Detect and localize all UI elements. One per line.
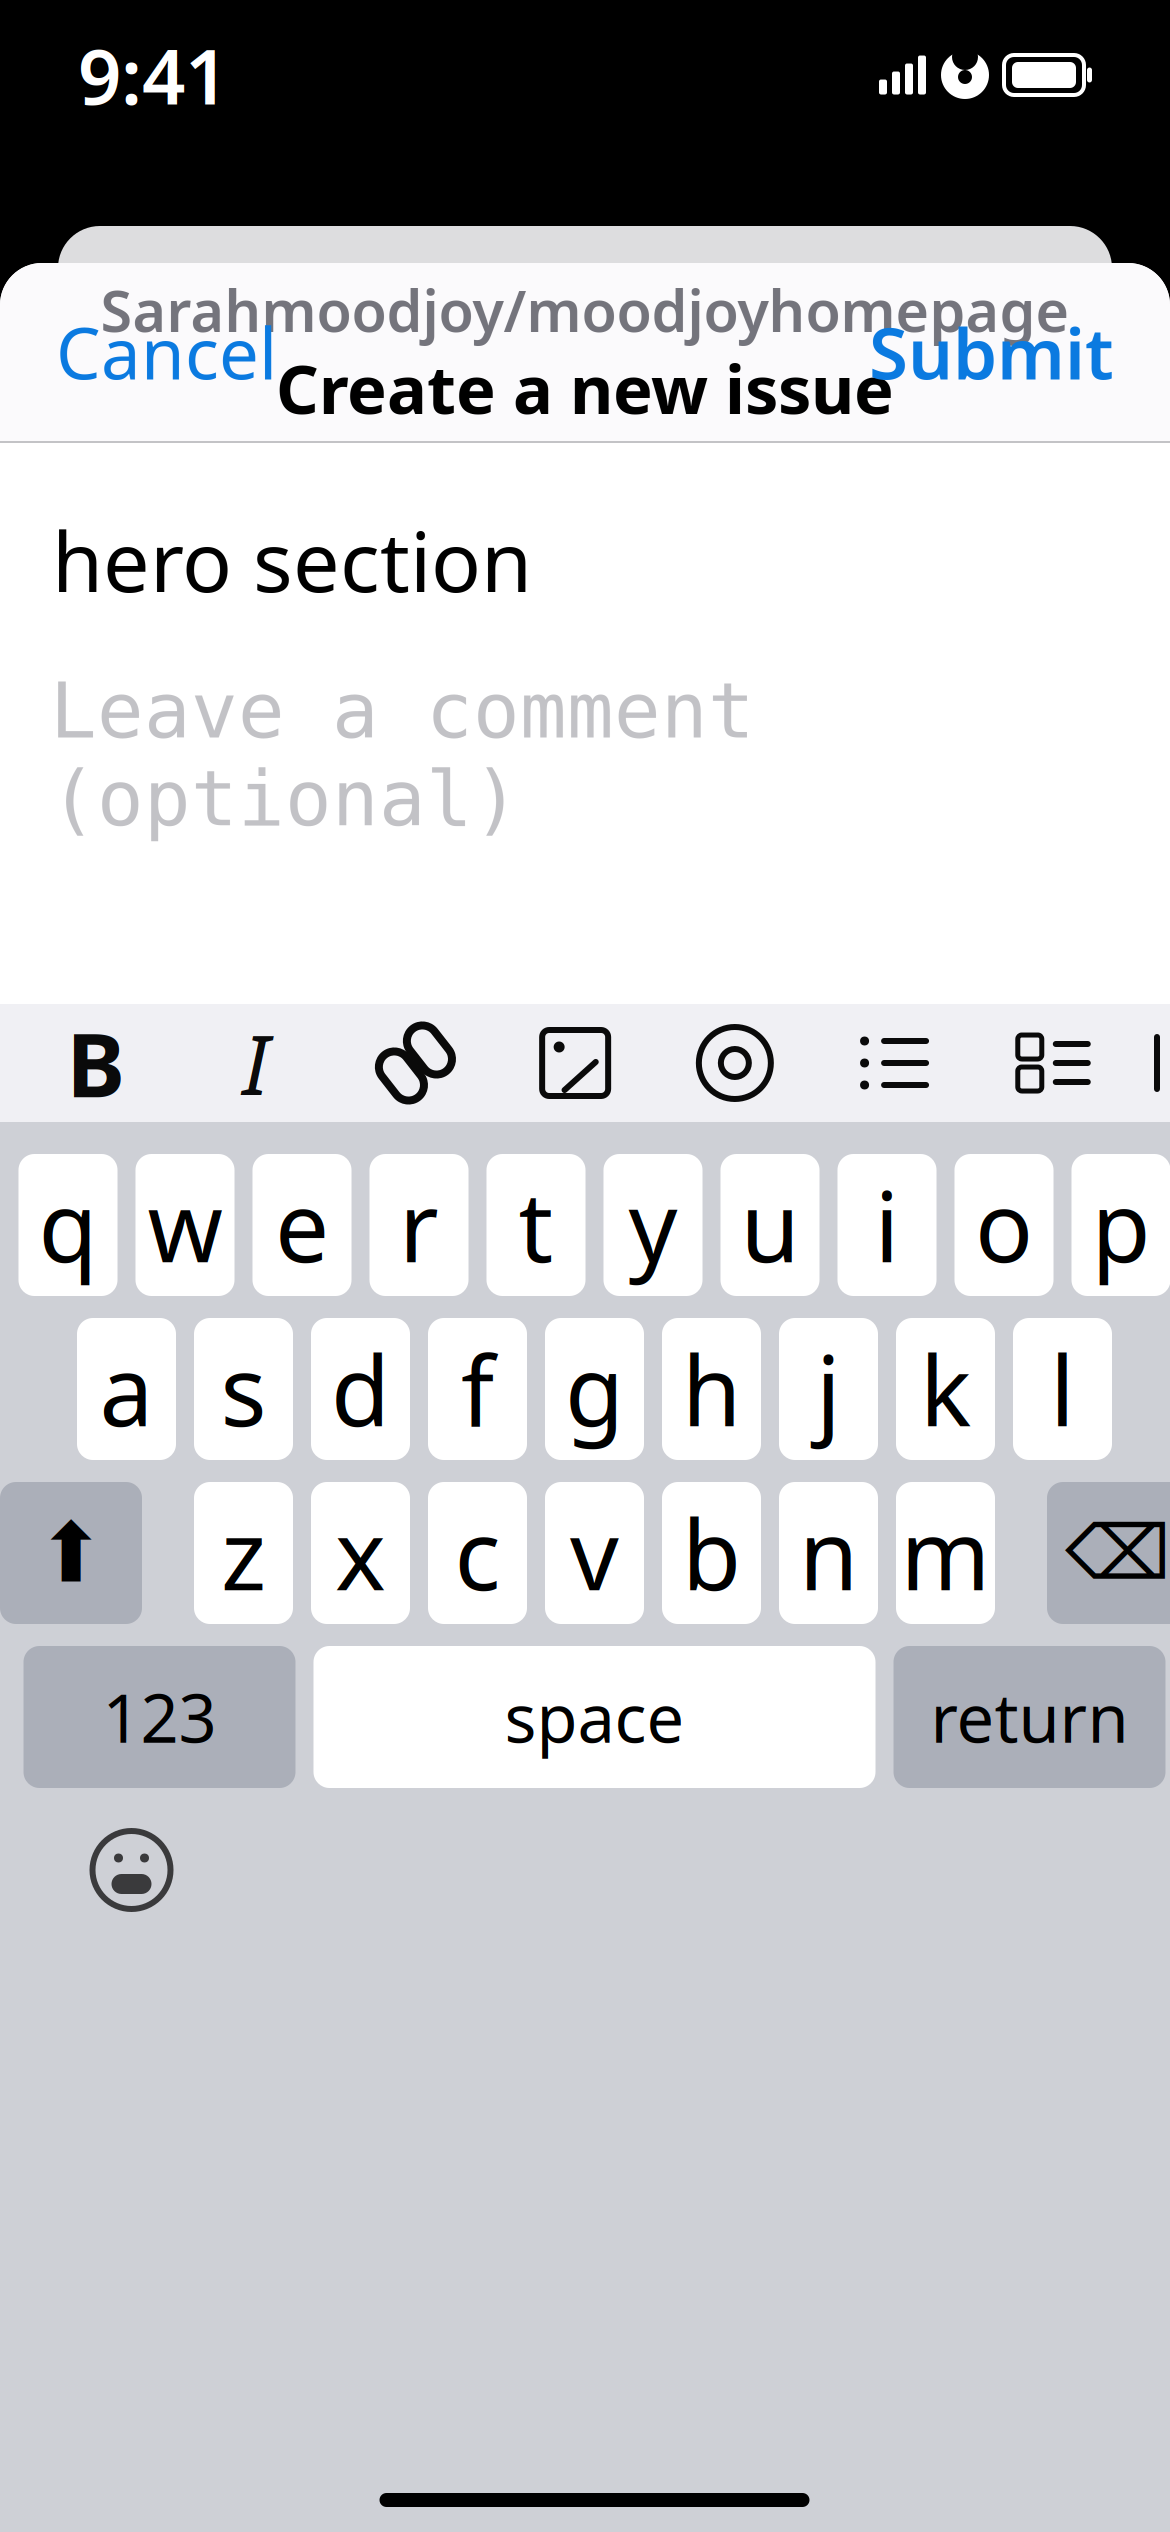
staticText: u <box>740 1161 799 1289</box>
staticText: o <box>975 1161 1033 1289</box>
staticText: Project <box>1001 1315 1109 1554</box>
staticText: w <box>147 1161 222 1289</box>
staticText: s <box>220 1325 266 1453</box>
button[interactable]: Bold <box>36 1003 156 1123</box>
staticText: l <box>1050 1325 1075 1453</box>
button[interactable]: Submit <box>821 283 1162 421</box>
button[interactable]: space <box>313 1646 875 1788</box>
staticText: Leave a comment (optional) <box>50 667 755 842</box>
staticText: i <box>874 1161 899 1289</box>
button[interactable]: Milestone <box>605 1385 859 1485</box>
button[interactable]: Link <box>355 1003 475 1123</box>
button[interactable]: Delete <box>1047 1482 1170 1624</box>
staticText: e <box>275 1161 329 1289</box>
button[interactable]: n <box>779 1482 878 1624</box>
staticText: n <box>799 1489 858 1617</box>
staticText: Submit <box>869 305 1114 399</box>
button[interactable]: Project <box>893 1385 1145 1485</box>
button[interactable]: j <box>779 1318 878 1460</box>
staticText: hero section <box>52 505 532 615</box>
staticText: ⬆ <box>36 1506 105 1600</box>
staticText: 123 <box>102 1673 216 1761</box>
staticText: Milestone <box>713 1315 823 1554</box>
staticText: B <box>66 1005 125 1121</box>
staticText: Sarahmoodjoy/moodjoyhomepage <box>100 272 1069 348</box>
button[interactable]: f <box>428 1318 527 1460</box>
staticText: ⌫ <box>1065 1511 1170 1595</box>
button[interactable]: p <box>1071 1154 1170 1296</box>
staticText: f <box>461 1325 494 1453</box>
button[interactable]: c <box>428 1482 527 1624</box>
staticText: h <box>682 1325 741 1453</box>
button[interactable]: Mention <box>675 1003 795 1123</box>
staticText: + <box>119 1388 142 1441</box>
button[interactable]: y <box>603 1154 702 1296</box>
button[interactable]: z <box>194 1482 293 1624</box>
button[interactable]: 123 <box>23 1646 295 1788</box>
staticText: c <box>454 1489 500 1617</box>
staticText: q <box>38 1161 97 1289</box>
button[interactable]: r <box>369 1154 468 1296</box>
staticText: space <box>504 1673 684 1761</box>
button[interactable]: Bulleted list <box>835 1003 955 1123</box>
button[interactable]: return <box>893 1646 1165 1788</box>
staticText: return <box>930 1673 1128 1761</box>
staticText: t <box>518 1161 553 1289</box>
button[interactable]: Shift <box>0 1482 142 1624</box>
button[interactable]: i <box>837 1154 936 1296</box>
staticText: g <box>565 1325 624 1453</box>
button[interactable]: q <box>18 1154 117 1296</box>
button[interactable]: + <box>51 1385 303 1485</box>
staticText: Create a new issue <box>276 344 894 432</box>
button[interactable]: Insert image <box>515 1003 635 1123</box>
button[interactable]: v <box>545 1482 644 1624</box>
button[interactable]: d <box>311 1318 410 1460</box>
staticText: x <box>335 1489 386 1617</box>
button[interactable]: w <box>135 1154 234 1296</box>
staticText: r <box>399 1161 439 1289</box>
button[interactable]: g <box>545 1318 644 1460</box>
staticText: Label <box>445 1355 535 1515</box>
staticText: v <box>570 1489 619 1617</box>
button[interactable]: Label <box>337 1385 571 1485</box>
button[interactable]: m <box>896 1482 995 1624</box>
button[interactable]: t <box>486 1154 585 1296</box>
button[interactable]: h <box>662 1318 761 1460</box>
button[interactable]: o <box>954 1154 1053 1296</box>
button[interactable]: a <box>77 1318 176 1460</box>
staticText: d <box>331 1325 390 1453</box>
staticText: y <box>628 1161 677 1289</box>
button[interactable]: k <box>896 1318 995 1460</box>
staticText: I <box>242 1008 269 1118</box>
button[interactable]: e <box>252 1154 351 1296</box>
button[interactable]: Emoji <box>79 1818 183 1922</box>
staticText: Assignee <box>159 1315 267 1554</box>
button[interactable]: s <box>194 1318 293 1460</box>
button[interactable]: u <box>720 1154 819 1296</box>
button[interactable]: Italic <box>196 1003 316 1123</box>
button[interactable]: l <box>1013 1318 1112 1460</box>
button[interactable]: b <box>662 1482 761 1624</box>
staticText: k <box>920 1325 971 1453</box>
staticText: j <box>816 1325 841 1453</box>
staticText: 9:41 <box>78 24 228 125</box>
button[interactable]: Cancel <box>8 283 325 421</box>
staticText: a <box>99 1325 153 1453</box>
button[interactable]: Task list <box>994 1003 1114 1123</box>
staticText: z <box>221 1489 266 1617</box>
button[interactable]: x <box>311 1482 410 1624</box>
staticText: b <box>682 1489 741 1617</box>
staticText: m <box>900 1489 990 1617</box>
staticText: Cancel <box>56 305 277 399</box>
staticText: p <box>1091 1161 1150 1289</box>
